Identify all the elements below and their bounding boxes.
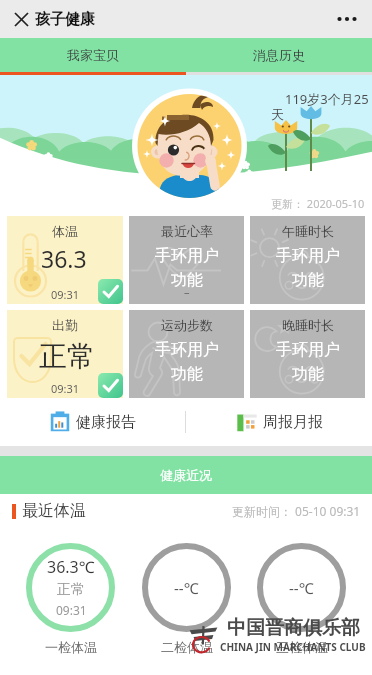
staticText: 手环用户	[155, 340, 219, 360]
staticText: 运动步数	[161, 317, 213, 333]
staticText: 功能	[171, 270, 203, 290]
staticText: 健康近况	[160, 467, 212, 483]
staticText: –	[184, 284, 190, 299]
staticText: 孩子健康	[35, 10, 95, 29]
button[interactable]: 体温	[7, 216, 123, 304]
button[interactable]: 出勤	[7, 310, 123, 398]
staticText: 手环用户	[155, 246, 219, 266]
staticText: 119岁3个月25	[285, 90, 369, 108]
button[interactable]: Verified	[98, 279, 123, 304]
staticText: 我家宝贝	[67, 47, 119, 63]
button[interactable]: 健康报告	[0, 398, 185, 446]
staticText: 周报月报	[263, 413, 323, 432]
staticText: --℃	[289, 578, 314, 598]
staticText: 消息历史	[253, 47, 305, 63]
staticText: 36.3	[41, 243, 87, 274]
staticText: 09:31	[56, 602, 87, 618]
staticText: 功能	[292, 364, 324, 384]
staticText: 36.3℃	[47, 556, 95, 578]
button[interactable]: 消息历史	[186, 38, 372, 72]
staticText: 出勤	[52, 317, 78, 333]
staticText: 晚睡时长	[282, 317, 334, 333]
staticText: 午睡时长	[282, 223, 334, 239]
staticText: 中国晋商俱乐部	[227, 616, 360, 640]
staticText: 更新时间： 05-10 09:31	[232, 503, 361, 519]
button[interactable]: 周报月报	[186, 398, 372, 446]
button[interactable]: Avatar	[132, 88, 247, 203]
staticText: 体温	[52, 223, 78, 239]
button[interactable]: 午睡时长	[250, 216, 365, 304]
button[interactable]: More options	[330, 2, 364, 36]
staticText: 二检体温	[161, 639, 213, 655]
staticText: 功能	[171, 364, 203, 384]
button[interactable]: 晚睡时长	[250, 310, 365, 398]
staticText: 功能	[292, 270, 324, 290]
staticText: 手环用户	[276, 340, 340, 360]
staticText: 最近心率	[161, 223, 213, 239]
staticText: 最近体温	[22, 501, 86, 521]
button[interactable]: 36.3℃	[26, 543, 115, 655]
staticText: 09:31	[51, 287, 80, 302]
staticText: 一检体温	[45, 639, 97, 655]
staticText: 正常	[57, 581, 85, 599]
staticText: 天	[271, 106, 284, 122]
button[interactable]: --℃	[257, 543, 346, 655]
staticText: --℃	[174, 578, 199, 598]
staticText: 正常	[39, 339, 95, 374]
button[interactable]: 运动步数	[129, 310, 244, 398]
button[interactable]: Verified	[98, 373, 123, 398]
staticText: CHINA JIN MARCHANTS CLUB	[220, 640, 366, 654]
button[interactable]: 最近心率	[129, 216, 244, 304]
staticText: 更新： 2020-05-10	[271, 196, 365, 211]
button[interactable]: Close	[6, 4, 36, 34]
button[interactable]: --℃	[142, 543, 231, 655]
staticText: 09:31	[51, 381, 80, 396]
staticText: 健康报告	[76, 413, 136, 432]
staticText: 手环用户	[276, 246, 340, 266]
staticText: 三检体温	[276, 639, 328, 655]
button[interactable]: 健康近况	[0, 456, 372, 494]
button[interactable]: 我家宝贝	[0, 38, 186, 72]
